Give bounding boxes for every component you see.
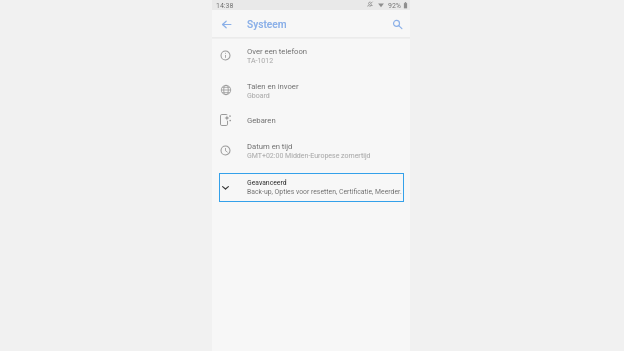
staticText: 92% — [388, 2, 401, 10]
button[interactable]: Over een telefoon — [212, 38, 410, 73]
staticText: 14:38 — [216, 2, 234, 10]
staticText: Gboard — [247, 92, 270, 100]
staticText: GMT+02:00 Midden-Europese zomertijd — [247, 152, 371, 160]
staticText: Datum en tijd — [247, 142, 293, 151]
button[interactable]: Back — [214, 12, 238, 36]
staticText: Back-up, Opties voor resetten, Certifica… — [247, 188, 405, 196]
staticText: TA-1012 — [247, 57, 274, 65]
button[interactable]: Datum en tijd — [212, 135, 410, 165]
staticText: Gebaren — [247, 116, 276, 125]
button[interactable]: Gebaren — [212, 105, 410, 135]
staticText: Geavanceerd — [247, 179, 287, 187]
staticText: Systeem — [247, 19, 287, 31]
button[interactable]: Geavanceerd — [219, 173, 404, 202]
staticText: Over een telefoon — [247, 47, 308, 56]
staticText: Talen en invoer — [247, 82, 299, 91]
button[interactable]: Search — [385, 12, 409, 36]
button[interactable]: Talen en invoer — [212, 75, 410, 105]
